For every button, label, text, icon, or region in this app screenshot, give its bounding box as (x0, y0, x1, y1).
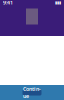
staticText: ▮▮▮ (55, 0, 61, 5)
staticText: 9:41 (3, 0, 13, 6)
button[interactable]: Continue (22, 89, 41, 95)
staticText: Continue (23, 85, 41, 100)
